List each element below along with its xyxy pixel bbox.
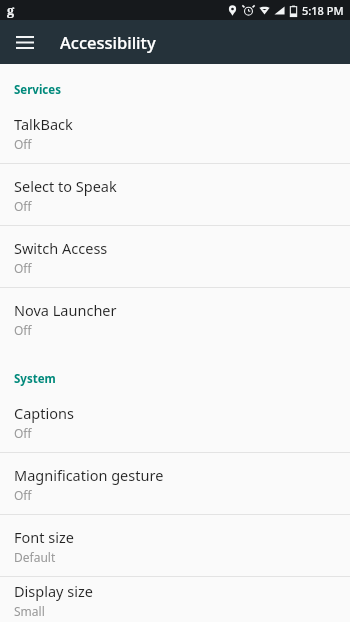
staticText: Default	[14, 549, 56, 565]
staticText: TalkBack	[14, 114, 73, 134]
button[interactable]: Nova Launcher	[0, 288, 350, 349]
staticText: Captions	[14, 403, 74, 423]
staticText: Services	[14, 82, 61, 98]
staticText: Nova Launcher	[14, 300, 117, 320]
button[interactable]: Font size	[0, 515, 350, 576]
staticText: Magnification gesture	[14, 465, 164, 485]
staticText: Off	[14, 425, 32, 441]
staticText: Switch Access	[14, 238, 108, 258]
staticText: Off	[14, 322, 32, 338]
button[interactable]: Display size	[0, 577, 350, 622]
staticText: 5:18 PM	[302, 3, 344, 18]
button[interactable]: Open navigation menu	[6, 23, 44, 61]
staticText: Display size	[14, 581, 93, 601]
button[interactable]: Switch Access	[0, 226, 350, 287]
staticText: System	[14, 371, 56, 387]
staticText: Small	[14, 603, 45, 619]
button[interactable]: Captions	[0, 391, 350, 452]
staticText: g	[7, 1, 15, 19]
button[interactable]: TalkBack	[0, 102, 350, 163]
staticText: Off	[14, 487, 32, 503]
staticText: Off	[14, 260, 32, 276]
staticText: Font size	[14, 527, 74, 547]
button[interactable]: Magnification gesture	[0, 453, 350, 514]
staticText: Off	[14, 198, 32, 214]
staticText: Accessibility	[60, 31, 156, 53]
staticText: Off	[14, 136, 32, 152]
staticText: Select to Speak	[14, 176, 117, 196]
button[interactable]: Select to Speak	[0, 164, 350, 225]
